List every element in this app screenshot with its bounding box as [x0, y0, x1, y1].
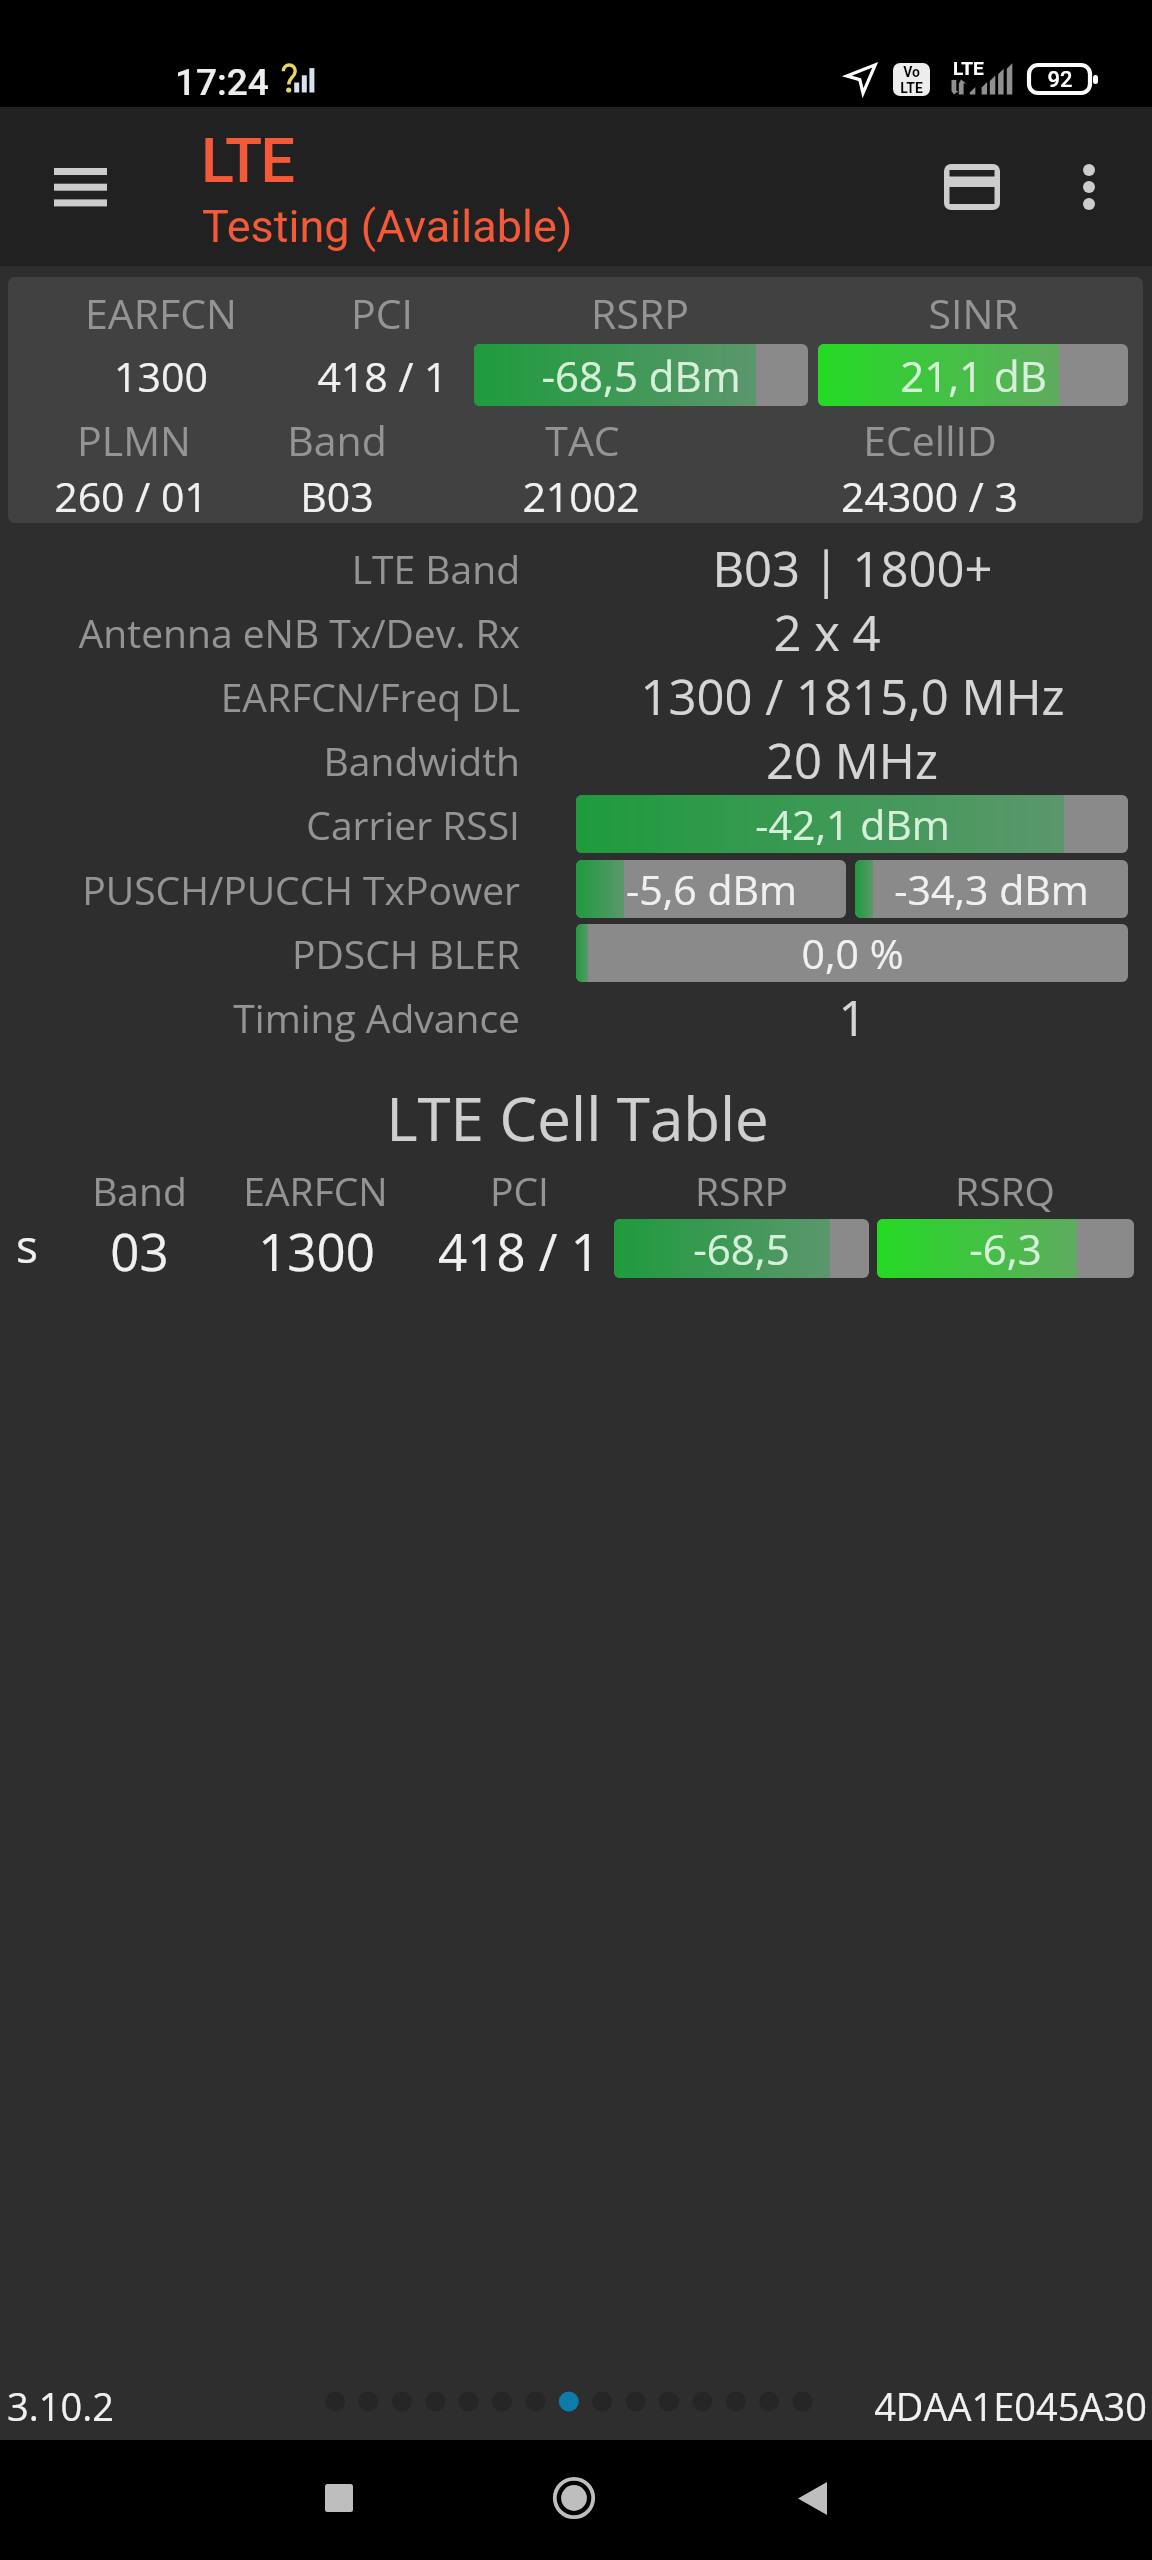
- staticText: -34,3 dBm: [894, 861, 1089, 917]
- button[interactable]: 0,0 %: [576, 924, 1128, 982]
- staticText: Testing (Available): [202, 200, 573, 253]
- staticText: -5,6 dBm: [626, 861, 797, 917]
- staticText: 20 MHz: [766, 727, 938, 794]
- button[interactable]: EARFCN/Freq DL: [0, 664, 1152, 728]
- staticText: ECellID: [863, 412, 997, 468]
- staticText: PCI: [490, 1164, 549, 1217]
- staticText: LTE Band: [351, 542, 520, 595]
- staticText: Bandwidth: [323, 734, 520, 787]
- staticText: s: [16, 1214, 38, 1277]
- staticText: RSRP: [591, 285, 689, 341]
- staticText: RSRP: [695, 1164, 788, 1217]
- staticText: Band: [287, 412, 387, 468]
- button[interactable]: EARFCN: [8, 277, 1143, 523]
- staticText: 3.10.2: [7, 2380, 114, 2432]
- button[interactable]: Open navigation drawer: [20, 127, 140, 247]
- staticText: EARFCN: [85, 285, 237, 341]
- staticText: EARFCN/Freq DL: [220, 670, 520, 723]
- staticText: -68,5: [693, 1220, 790, 1277]
- staticText: EARFCN: [243, 1164, 388, 1217]
- staticText: 21,1 dB: [900, 347, 1047, 404]
- button[interactable]: LTE Band: [0, 536, 1152, 600]
- button[interactable]: -68,5: [614, 1219, 869, 1278]
- staticText: 1300: [114, 348, 208, 404]
- staticText: LTE: [953, 57, 984, 79]
- staticText: Band: [92, 1164, 187, 1217]
- staticText: 418 / 1: [317, 348, 448, 404]
- staticText: 1: [838, 984, 867, 1051]
- staticText: B03: [300, 468, 374, 523]
- button[interactable]: Back: [772, 2458, 852, 2538]
- staticText: 4DAA1E045A30: [874, 2380, 1147, 2432]
- staticText: 260 / 01: [54, 468, 208, 523]
- button[interactable]: PUSCH/PUCCH TxPower: [0, 857, 1152, 921]
- staticText: 21002: [522, 468, 640, 523]
- staticText: 24300 / 3: [841, 468, 1018, 523]
- staticText: 418 / 1: [438, 1216, 600, 1285]
- staticText: -68,5 dBm: [541, 347, 741, 404]
- button[interactable]: Recent apps: [299, 2458, 379, 2538]
- button[interactable]: -34,3 dBm: [855, 860, 1128, 918]
- staticText: 0,0 %: [801, 925, 904, 981]
- staticText: PLMN: [77, 412, 191, 468]
- staticText: 2 x 4: [773, 599, 881, 666]
- staticText: Antenna eNB Tx/Dev. Rx: [78, 606, 520, 659]
- button[interactable]: Timing Advance: [0, 985, 1152, 1049]
- staticText: 03: [110, 1216, 169, 1285]
- staticText: 17:24: [175, 61, 269, 104]
- staticText: LTE Cell Table: [386, 1077, 769, 1157]
- button[interactable]: Home: [534, 2458, 614, 2538]
- button[interactable]: Change layout: [917, 132, 1027, 242]
- staticText: 1300 / 1815,0 MHz: [640, 663, 1065, 730]
- staticText: -6,3: [969, 1220, 1042, 1277]
- staticText: Carrier RSSI: [306, 798, 520, 851]
- button[interactable]: -5,6 dBm: [576, 860, 846, 918]
- staticText: PCI: [351, 285, 413, 341]
- staticText: LTE: [900, 80, 923, 96]
- button[interactable]: Carrier RSSI: [0, 792, 1152, 856]
- staticText: -42,1 dBm: [755, 796, 950, 852]
- button[interactable]: Antenna eNB Tx/Dev. Rx: [0, 600, 1152, 664]
- button[interactable]: More options: [1036, 132, 1141, 242]
- staticText: Vo: [903, 64, 920, 80]
- staticText: Timing Advance: [233, 991, 520, 1044]
- button[interactable]: -42,1 dBm: [576, 795, 1128, 853]
- staticText: PUSCH/PUCCH TxPower: [82, 863, 520, 916]
- staticText: PDSCH BLER: [292, 927, 520, 980]
- button[interactable]: Bandwidth: [0, 728, 1152, 792]
- staticText: TAC: [545, 412, 620, 468]
- staticText: 92: [1047, 67, 1073, 93]
- staticText: 1300: [258, 1216, 375, 1285]
- staticText: SINR: [928, 285, 1019, 341]
- button[interactable]: PDSCH BLER: [0, 921, 1152, 985]
- staticText: LTE: [201, 125, 294, 196]
- staticText: B03 | 1800+: [712, 535, 993, 602]
- button[interactable]: -6,3: [877, 1219, 1134, 1278]
- staticText: RSRQ: [955, 1164, 1055, 1217]
